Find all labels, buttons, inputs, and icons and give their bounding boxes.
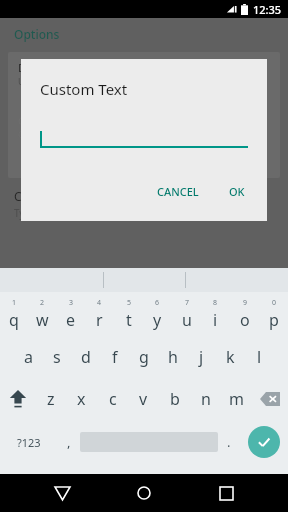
button[interactable]: x bbox=[66, 378, 97, 420]
staticText: 9 bbox=[243, 298, 248, 308]
staticText: 8 bbox=[213, 298, 218, 308]
button[interactable]: OK bbox=[221, 179, 253, 204]
button[interactable]: m bbox=[221, 378, 252, 420]
button[interactable]: h bbox=[158, 336, 187, 378]
button[interactable]: 6 bbox=[143, 292, 172, 336]
staticText: 12:35 bbox=[253, 2, 282, 17]
staticText: e bbox=[66, 309, 76, 331]
staticText: D bbox=[18, 60, 27, 75]
staticText: ?123 bbox=[17, 435, 41, 450]
staticText: 4 bbox=[97, 298, 102, 308]
button[interactable]: 9 bbox=[230, 292, 259, 336]
button[interactable]: Enter bbox=[240, 420, 288, 464]
staticText: t bbox=[126, 309, 132, 331]
button[interactable]: 7 bbox=[172, 292, 201, 336]
staticText: c bbox=[109, 388, 117, 410]
button[interactable]: Shift bbox=[0, 378, 36, 420]
staticText: z bbox=[47, 388, 55, 410]
button[interactable]: 2 bbox=[28, 292, 56, 336]
staticText: r bbox=[96, 309, 103, 331]
staticText: Type your custom text bbox=[14, 206, 119, 220]
button[interactable]: , bbox=[58, 420, 80, 464]
staticText: b bbox=[170, 388, 180, 410]
button[interactable]: g bbox=[129, 336, 158, 378]
button[interactable]: j bbox=[187, 336, 216, 378]
staticText: O bbox=[18, 128, 26, 140]
staticText: 2 bbox=[40, 298, 45, 308]
button[interactable]: k bbox=[216, 336, 245, 378]
button[interactable]: CANCEL bbox=[149, 179, 207, 204]
staticText: n bbox=[201, 388, 211, 410]
staticText: . bbox=[227, 433, 231, 451]
button[interactable] bbox=[80, 420, 218, 464]
button[interactable]: b bbox=[159, 378, 190, 420]
button[interactable]: Backspace bbox=[252, 378, 288, 420]
button[interactable]: . bbox=[218, 420, 240, 464]
button[interactable]: 8 bbox=[201, 292, 230, 336]
button[interactable]: n bbox=[190, 378, 221, 420]
button[interactable]: l bbox=[245, 336, 274, 378]
staticText: OK bbox=[229, 184, 245, 199]
staticText: l bbox=[257, 346, 262, 368]
button[interactable]: 1 bbox=[0, 292, 28, 336]
button[interactable]: f bbox=[100, 336, 129, 378]
staticText: Options bbox=[14, 26, 60, 42]
staticText: C bbox=[18, 113, 25, 128]
staticText: 5 bbox=[127, 298, 132, 308]
staticText: y bbox=[153, 309, 162, 331]
staticText: CANCEL bbox=[157, 184, 199, 199]
staticText: 3 bbox=[69, 298, 74, 308]
staticText: s bbox=[53, 346, 61, 368]
staticText: v bbox=[139, 388, 148, 410]
staticText: j bbox=[199, 346, 204, 368]
staticText: 1 bbox=[12, 298, 17, 308]
staticText: p bbox=[269, 309, 279, 331]
button[interactable]: v bbox=[128, 378, 159, 420]
staticText: h bbox=[168, 346, 178, 368]
staticText: 6 bbox=[155, 298, 160, 308]
staticText: , bbox=[67, 433, 71, 451]
button[interactable]: Recents bbox=[206, 474, 246, 512]
staticText: u bbox=[182, 309, 192, 331]
button[interactable]: 5 bbox=[114, 292, 143, 336]
staticText: Custom Text bbox=[40, 79, 128, 99]
staticText: w bbox=[36, 309, 49, 331]
staticText: 0 bbox=[272, 298, 277, 308]
staticText: U bbox=[18, 75, 25, 87]
staticText: q bbox=[9, 309, 19, 331]
button[interactable]: c bbox=[97, 378, 128, 420]
staticText: i bbox=[213, 309, 218, 331]
staticText: f bbox=[112, 346, 118, 368]
button[interactable]: 3 bbox=[56, 292, 85, 336]
button[interactable]: 4 bbox=[85, 292, 114, 336]
button[interactable]: s bbox=[42, 336, 71, 378]
button[interactable]: a bbox=[14, 336, 42, 378]
button[interactable]: z bbox=[36, 378, 66, 420]
button[interactable]: 0 bbox=[259, 292, 288, 336]
staticText: a bbox=[24, 346, 33, 368]
button[interactable]: ?123 bbox=[0, 420, 58, 464]
staticText: k bbox=[226, 346, 235, 368]
staticText: Custom Text bbox=[14, 188, 84, 204]
staticText: g bbox=[139, 346, 149, 368]
staticText: x bbox=[77, 388, 86, 410]
staticText: 7 bbox=[185, 298, 190, 308]
staticText: d bbox=[81, 346, 91, 368]
button[interactable]: Home bbox=[124, 474, 164, 512]
button[interactable]: d bbox=[71, 336, 100, 378]
staticText: o bbox=[240, 309, 250, 331]
button[interactable]: Back bbox=[42, 474, 82, 512]
staticText: m bbox=[229, 388, 244, 410]
